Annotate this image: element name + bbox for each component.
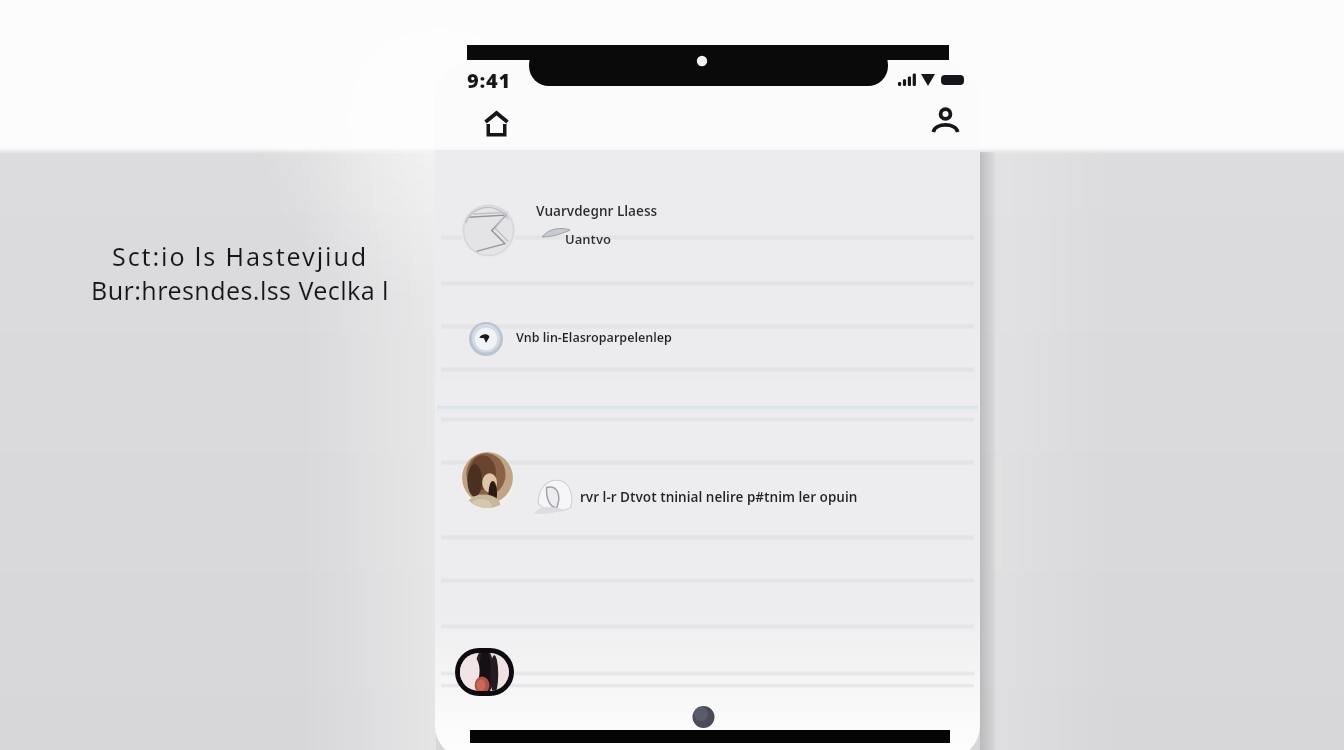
staticText: rvr l-r Dtvot tninial nelire p#tnim ler …	[580, 488, 858, 506]
staticText: Bur:hresndes.lss Veclka l	[91, 273, 389, 307]
staticText: Uantvo	[565, 230, 612, 248]
button[interactable]: Home	[475, 102, 517, 144]
staticText: Sct:io ls Hastevjiud	[112, 239, 369, 273]
button[interactable]: Vuarvdegnr Llaess	[435, 175, 980, 280]
staticText: Vnb lin-Elasroparpelenlep	[516, 329, 672, 346]
button[interactable]	[435, 630, 980, 710]
button[interactable]: Account	[924, 100, 966, 142]
button[interactable]: rvr l-r Dtvot tninial nelire p#tnim ler …	[435, 440, 980, 525]
staticText: Vuarvdegnr Llaess	[536, 202, 658, 220]
staticText: 9:41	[467, 67, 512, 94]
button[interactable]: Vnb lin-Elasroparpelenlep	[435, 300, 980, 366]
